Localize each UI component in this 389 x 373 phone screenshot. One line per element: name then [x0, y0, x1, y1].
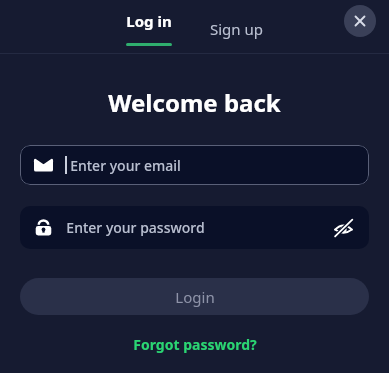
- button[interactable]: Enter your email: [20, 145, 369, 185]
- staticText: Enter your email: [70, 156, 181, 175]
- button[interactable]: Log in: [118, 0, 180, 46]
- staticText: Login: [175, 287, 215, 307]
- button[interactable]: Sign up: [202, 8, 271, 39]
- button[interactable]: Forgot password?: [125, 332, 265, 357]
- button[interactable]: Show password: [331, 216, 355, 240]
- staticText: Forgot password?: [133, 335, 257, 354]
- button[interactable]: Close: [344, 5, 376, 37]
- staticText: Sign up: [210, 19, 263, 39]
- staticText: Log in: [126, 11, 172, 31]
- staticText: Enter your password: [66, 218, 205, 237]
- staticText: Welcome back: [108, 86, 281, 119]
- button[interactable]: Enter your password: [20, 206, 369, 249]
- button[interactable]: Login: [20, 278, 369, 315]
